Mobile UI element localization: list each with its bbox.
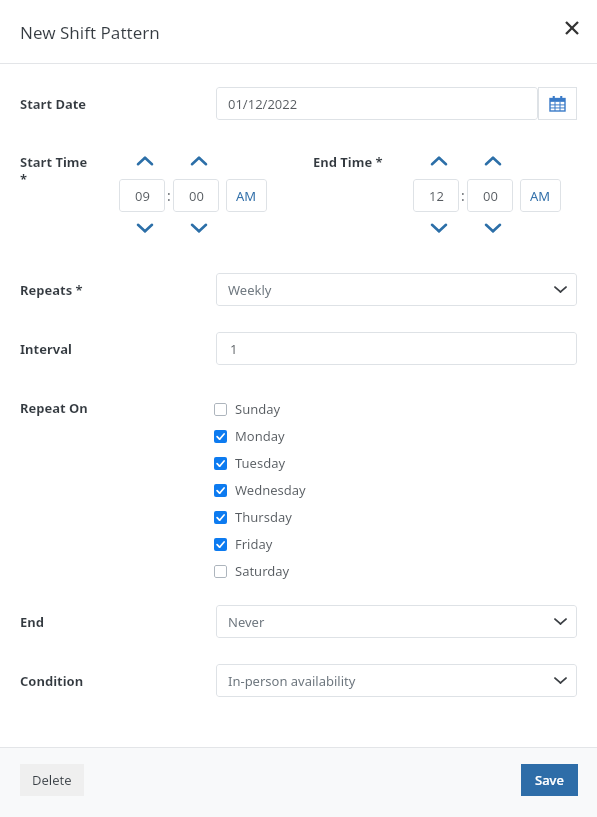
button[interactable]: Save xyxy=(521,764,578,796)
button[interactable]: Wednesday xyxy=(214,480,306,500)
staticText: 00 xyxy=(483,187,498,205)
staticText: Friday xyxy=(235,535,273,553)
staticText: Start Time xyxy=(20,153,88,171)
staticText: : xyxy=(167,186,171,205)
staticText: 09 xyxy=(135,187,150,205)
staticText: Repeat On xyxy=(20,399,88,417)
button[interactable]: Decrease xyxy=(134,219,156,237)
staticText: Wednesday xyxy=(235,481,306,499)
button[interactable]: 1 xyxy=(216,332,577,365)
staticText: In-person availability xyxy=(228,672,356,690)
button[interactable]: Increase xyxy=(134,152,156,170)
button[interactable]: 00 xyxy=(173,179,219,212)
staticText: Interval xyxy=(20,340,72,358)
staticText: Delete xyxy=(32,771,72,789)
button[interactable]: Tuesday xyxy=(214,453,286,473)
button[interactable]: Monday xyxy=(214,426,285,446)
staticText: Condition xyxy=(20,672,84,690)
staticText: 00 xyxy=(189,187,204,205)
button[interactable]: Increase xyxy=(482,152,504,170)
staticText: * xyxy=(20,170,28,188)
staticText: AM xyxy=(530,187,551,205)
button[interactable]: Decrease xyxy=(482,219,504,237)
staticText: 01/12/2022 xyxy=(228,95,298,113)
staticText: AM xyxy=(236,187,257,205)
button[interactable]: Increase xyxy=(188,152,210,170)
staticText: End xyxy=(20,613,44,631)
button[interactable]: Increase xyxy=(428,152,450,170)
staticText: Tuesday xyxy=(235,454,286,472)
button[interactable]: 01/12/2022 xyxy=(216,87,538,120)
staticText: New Shift Pattern xyxy=(20,21,160,44)
button[interactable]: 09 xyxy=(119,179,165,212)
staticText: Thursday xyxy=(235,508,292,526)
button[interactable]: Delete xyxy=(20,764,84,796)
button[interactable]: Saturday xyxy=(214,561,290,581)
button[interactable]: Weekly xyxy=(216,273,577,306)
button[interactable]: Never xyxy=(216,605,577,638)
button[interactable]: 12 xyxy=(413,179,459,212)
staticText: Repeats * xyxy=(20,281,83,299)
button[interactable]: Close xyxy=(558,14,586,42)
button[interactable]: Sunday xyxy=(214,399,281,419)
staticText: Monday xyxy=(235,427,285,445)
staticText: End Time * xyxy=(313,153,383,171)
staticText: Start Date xyxy=(20,95,87,113)
button[interactable]: Open calendar xyxy=(538,87,577,120)
staticText: 12 xyxy=(429,187,444,205)
staticText: : xyxy=(461,186,465,205)
button[interactable]: AM xyxy=(520,179,561,212)
button[interactable]: Decrease xyxy=(428,219,450,237)
button[interactable]: AM xyxy=(226,179,267,212)
staticText: 1 xyxy=(230,340,238,358)
button[interactable]: Friday xyxy=(214,534,273,554)
button[interactable]: Thursday xyxy=(214,507,292,527)
staticText: Weekly xyxy=(228,281,272,299)
staticText: Sunday xyxy=(235,400,281,418)
staticText: Saturday xyxy=(235,562,290,580)
button[interactable]: In-person availability xyxy=(216,664,577,697)
button[interactable]: 00 xyxy=(467,179,513,212)
button[interactable]: Decrease xyxy=(188,219,210,237)
staticText: Save xyxy=(535,771,564,789)
staticText: Never xyxy=(228,613,265,631)
